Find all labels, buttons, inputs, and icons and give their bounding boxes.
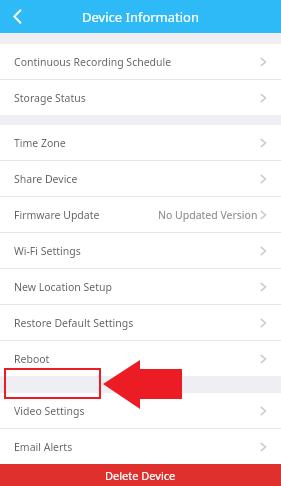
staticText: Device Information [82,8,200,26]
button[interactable]: Share Device [0,161,281,197]
button[interactable]: Back [0,0,34,33]
button[interactable]: Continuous Recording Schedule [0,44,281,80]
staticText: Share Device [14,172,78,186]
button[interactable]: Firmware Update [0,197,281,233]
staticText: Restore Default Settings [14,316,134,330]
staticText: Continuous Recording Schedule [14,55,172,69]
staticText: Video Settings [14,404,85,418]
button[interactable]: Time Zone [0,125,281,161]
button[interactable]: Reboot [0,341,281,376]
button[interactable]: Wi-Fi Settings [0,233,281,269]
staticText: No Updated Version [158,208,258,222]
staticText: Storage Status [14,91,86,105]
button[interactable]: New Location Setup [0,269,281,305]
button[interactable]: Delete Device [0,464,281,486]
button[interactable]: Storage Status [0,80,281,115]
staticText: New Location Setup [14,280,112,294]
staticText: Firmware Update [14,208,100,222]
staticText: Wi-Fi Settings [14,244,81,258]
staticText: Time Zone [14,136,66,150]
staticText: Reboot [14,352,50,366]
staticText: Email Alerts [14,440,73,454]
button[interactable]: Email Alerts [0,429,281,464]
button[interactable]: Restore Default Settings [0,305,281,341]
button[interactable]: Video Settings [0,393,281,429]
staticText: Delete Device [105,468,176,483]
